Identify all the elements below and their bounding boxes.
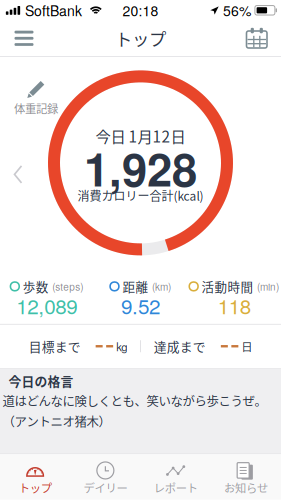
staticText: SoftBank [21,0,82,20]
button[interactable]: レポート [140,454,211,500]
staticText: 目標まで [29,337,81,355]
staticText: 1,928 [84,135,197,200]
staticText: 道はどんなに険しくとも、笑いながら歩こうぜ。（アントニオ猪木） [2,392,266,430]
button[interactable]: 前の日 [5,157,31,191]
button[interactable]: お知らせ [211,454,281,500]
staticText: 達成まで [154,337,206,355]
staticText: トップ [115,26,166,51]
staticText: 体重記録 [14,100,58,117]
staticText: レポート [154,479,198,496]
staticText: 12,089 [16,291,77,320]
staticText: 距離 [122,277,148,295]
staticText: (min) [257,279,279,293]
staticText: 9.52 [121,291,160,320]
staticText: 今日 1月12日 [95,125,185,147]
staticText: 日 [238,338,252,354]
button[interactable]: デイリー [70,454,140,500]
staticText: デイリー [83,479,127,496]
staticText: kg [113,338,127,354]
staticText: 活動時間 [202,277,254,295]
staticText: 今日の格言 [8,371,73,390]
staticText: 消費カロリー合計(kcal) [77,187,203,204]
staticText: (steps) [52,279,83,293]
staticText: 118 [218,291,251,320]
staticText [251,0,255,20]
staticText: 20:18 [122,0,158,20]
staticText: 歩数 [23,277,49,295]
button[interactable]: メニュー [0,20,48,56]
button[interactable]: 体重記録 [8,77,64,119]
staticText: (km) [152,279,171,293]
staticText: トップ [19,479,52,496]
button[interactable]: カレンダー [233,20,281,56]
staticText: お知らせ [224,479,268,496]
button[interactable]: トップ [0,454,70,500]
staticText: 56% [219,0,251,20]
